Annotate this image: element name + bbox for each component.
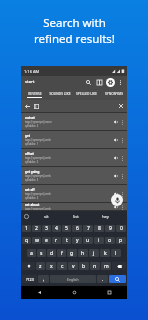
button[interactable]: p	[116, 237, 126, 244]
button[interactable]: l	[111, 249, 121, 257]
button[interactable]: set about	[21, 203, 127, 210]
button[interactable]: m	[101, 262, 111, 270]
staticText: p	[119, 237, 123, 244]
button[interactable]: r	[52, 237, 61, 244]
button[interactable]: More	[119, 173, 125, 179]
button[interactable]: More	[119, 204, 125, 210]
button[interactable]: outset	[21, 113, 127, 130]
button[interactable]: Pronounce	[112, 203, 119, 210]
button[interactable]: SYNONYMS	[100, 88, 127, 100]
button[interactable]: Home	[57, 286, 92, 299]
button[interactable]: 2	[32, 225, 41, 232]
button[interactable]: More	[119, 137, 125, 143]
button[interactable]: w	[32, 237, 41, 244]
button[interactable]: SPELLED LIKE	[73, 88, 100, 100]
staticText: list	[73, 214, 79, 220]
button[interactable]: More	[119, 191, 125, 197]
button[interactable]: i	[94, 237, 104, 244]
button[interactable]: Pronounce	[112, 154, 119, 161]
button[interactable]: Clear	[117, 102, 125, 110]
button[interactable]: u	[83, 237, 93, 244]
button[interactable]: f	[57, 249, 66, 257]
staticText: n	[93, 263, 97, 270]
staticText: 6	[76, 225, 79, 232]
button[interactable]: e	[42, 237, 51, 244]
button[interactable]: Pronounce	[112, 136, 119, 143]
button[interactable]: Back	[21, 286, 57, 299]
staticText: d	[50, 250, 54, 257]
button[interactable]: j	[89, 249, 99, 257]
button[interactable]: t	[62, 237, 71, 244]
button[interactable]: 6	[72, 225, 82, 232]
button[interactable]: o	[105, 237, 115, 244]
staticText: 5	[65, 225, 68, 232]
button[interactable]: REVERSE	[21, 88, 47, 100]
staticText: syllables: 2	[25, 124, 39, 128]
button[interactable]: Filter	[32, 102, 40, 110]
button[interactable]: History	[95, 78, 104, 87]
button[interactable]: offset	[21, 149, 127, 166]
button[interactable]: .	[97, 275, 108, 283]
button[interactable]: a	[27, 249, 36, 257]
button[interactable]: k	[100, 249, 110, 257]
button[interactable]: x	[46, 262, 56, 270]
button[interactable]: Search	[84, 78, 93, 87]
button[interactable]: h	[78, 249, 88, 257]
staticText: sit	[44, 214, 49, 220]
button[interactable]: q	[22, 237, 31, 244]
button[interactable]: 9	[105, 225, 115, 232]
button[interactable]: get	[21, 131, 127, 148]
button[interactable]: Voice search	[111, 194, 123, 206]
button[interactable]: Shift	[22, 262, 35, 270]
staticText: English	[67, 277, 79, 282]
button[interactable]: c	[57, 262, 67, 270]
button[interactable]: Back	[23, 102, 31, 110]
button[interactable]: Google	[21, 211, 32, 222]
button[interactable]: ?123	[22, 275, 37, 283]
staticText: h	[81, 250, 85, 257]
staticText: refined results!	[34, 31, 115, 47]
button[interactable]: Pronounce	[112, 190, 119, 197]
staticText: x	[50, 263, 53, 270]
button[interactable]: b	[79, 262, 89, 270]
staticText: tags: [synonym]-verb	[25, 207, 51, 210]
button[interactable]: n	[90, 262, 100, 270]
button[interactable]: Recents	[92, 286, 127, 299]
staticText: z	[39, 263, 42, 270]
button[interactable]: 3	[42, 225, 51, 232]
staticText: 7	[87, 225, 90, 232]
button[interactable]: Backspace	[112, 262, 126, 270]
button[interactable]: ,	[38, 275, 49, 283]
button[interactable]: hey	[91, 211, 121, 222]
button[interactable]: v	[68, 262, 78, 270]
staticText: ,	[43, 276, 45, 283]
button[interactable]: 7	[83, 225, 93, 232]
button[interactable]: y	[72, 237, 82, 244]
button[interactable]: get going	[21, 167, 127, 184]
button[interactable]: More	[119, 155, 125, 161]
button[interactable]: Pronounce	[112, 118, 119, 125]
button[interactable]: English	[50, 275, 96, 283]
button[interactable]: set off	[21, 185, 127, 202]
staticText: outset	[25, 116, 35, 120]
button[interactable]: Settings	[106, 78, 115, 87]
button[interactable]: g	[67, 249, 77, 257]
button[interactable]: SOUNDS LIKE	[47, 88, 73, 100]
button[interactable]: 4	[52, 225, 61, 232]
staticText: e	[45, 237, 48, 244]
button[interactable]: Search	[109, 275, 126, 283]
button[interactable]: s	[37, 249, 46, 257]
button[interactable]: 1	[22, 225, 31, 232]
button[interactable]: 5	[62, 225, 71, 232]
button[interactable]: z	[36, 262, 45, 270]
button[interactable]: 0	[116, 225, 126, 232]
button[interactable]: More	[119, 119, 125, 125]
button[interactable]: d	[47, 249, 56, 257]
staticText: 1:16 AM	[24, 69, 40, 74]
button[interactable]: Pronounce	[112, 172, 119, 179]
button[interactable]: sit	[32, 211, 61, 222]
button[interactable]: More options	[116, 78, 124, 86]
button[interactable]: 8	[94, 225, 104, 232]
staticText: get	[25, 134, 30, 138]
button[interactable]: list	[61, 211, 91, 222]
